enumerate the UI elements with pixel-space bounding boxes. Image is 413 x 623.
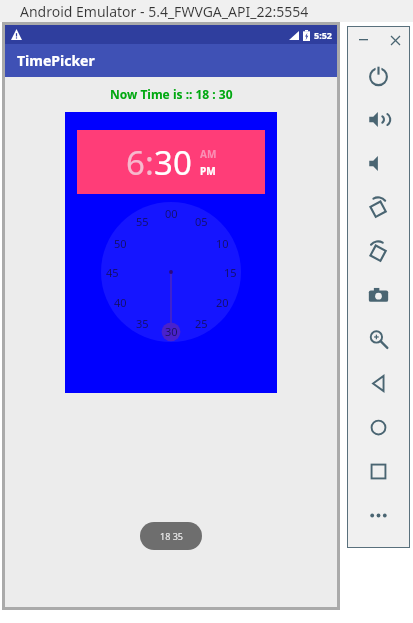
staticText: PM <box>200 164 216 178</box>
staticText: 55 <box>136 214 149 229</box>
button[interactable]: Close <box>386 31 404 49</box>
button[interactable]: Power <box>348 53 409 97</box>
staticText: 10 <box>216 236 229 251</box>
staticText: AM <box>200 147 217 161</box>
staticText: 45 <box>106 265 119 280</box>
button[interactable]: Minute dial <box>101 202 241 342</box>
staticText: 35 <box>136 316 149 331</box>
staticText: 15 <box>224 265 237 280</box>
button[interactable]: Volume up <box>348 97 409 141</box>
button[interactable]: More options <box>348 493 409 537</box>
button[interactable]: 6 <box>65 112 277 393</box>
staticText: 30 <box>154 140 192 185</box>
staticText: 05 <box>195 214 208 229</box>
button[interactable]: 6 <box>77 130 265 194</box>
staticText: : <box>145 140 154 185</box>
staticText: 5:52 <box>314 29 332 41</box>
staticText: Now Time is :: 18 : 30 <box>110 86 233 102</box>
staticText: Android Emulator - 5.4_FWVGA_API_22:5554 <box>20 2 309 21</box>
button[interactable]: Zoom <box>348 317 409 361</box>
button[interactable]: 18 35 <box>140 522 202 550</box>
button[interactable]: Volume down <box>348 141 409 185</box>
staticText: 20 <box>216 295 229 310</box>
button[interactable]: Back <box>348 361 409 405</box>
button[interactable]: Minimize <box>354 31 372 49</box>
staticText: 6 <box>126 140 145 185</box>
staticText: 30 <box>165 324 178 339</box>
button[interactable]: Recent apps <box>348 449 409 493</box>
staticText: TimePicker <box>17 51 95 70</box>
button[interactable]: Take screenshot <box>348 273 409 317</box>
staticText: 00 <box>165 206 178 221</box>
staticText: 25 <box>195 316 208 331</box>
button[interactable]: Home <box>348 405 409 449</box>
button[interactable]: Rotate left <box>348 185 409 229</box>
staticText: 40 <box>114 295 127 310</box>
staticText: 18 35 <box>160 530 183 542</box>
staticText: 50 <box>114 236 127 251</box>
button[interactable]: Rotate right <box>348 229 409 273</box>
button[interactable]: TimePicker <box>5 44 337 77</box>
